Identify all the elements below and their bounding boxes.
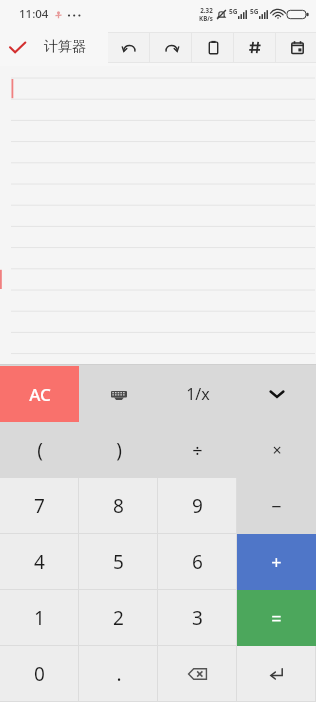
- button[interactable]: ÷: [158, 422, 237, 478]
- staticText: 5G: [250, 7, 259, 16]
- button[interactable]: Date: [276, 32, 316, 63]
- staticText: =: [271, 606, 282, 631]
- button[interactable]: 3: [158, 590, 237, 646]
- staticText: 5: [113, 549, 124, 575]
- staticText: 1: [34, 605, 45, 631]
- staticText: ): [116, 437, 122, 463]
- staticText: 7: [34, 493, 45, 519]
- button[interactable]: 8: [79, 478, 158, 534]
- staticText: AC: [29, 383, 51, 406]
- staticText: 1/x: [186, 383, 210, 405]
- button[interactable]: .: [79, 646, 158, 702]
- staticText: 3: [192, 605, 203, 631]
- button[interactable]: 2: [79, 590, 158, 646]
- button[interactable]: (: [0, 422, 79, 478]
- button[interactable]: Redo: [150, 32, 192, 63]
- button[interactable]: 5: [79, 534, 158, 590]
- staticText: ÷: [192, 438, 203, 463]
- staticText: 0: [34, 661, 45, 687]
- button[interactable]: 7: [0, 478, 79, 534]
- staticText: 计算器: [44, 38, 86, 56]
- staticText: KB/s: [199, 14, 213, 22]
- staticText: 5G: [229, 7, 238, 16]
- staticText: 11:04: [19, 6, 49, 22]
- staticText: (: [37, 437, 43, 463]
- button[interactable]: 1: [0, 590, 79, 646]
- button[interactable]: =: [237, 590, 316, 646]
- staticText: 6: [192, 549, 203, 575]
- button[interactable]: 4: [0, 534, 79, 590]
- button[interactable]: Keyboard: [79, 366, 158, 422]
- button[interactable]: 6: [158, 534, 237, 590]
- staticText: −: [271, 494, 282, 519]
- button[interactable]: 1/x: [158, 366, 237, 422]
- staticText: 2: [113, 605, 124, 631]
- staticText: ×: [272, 439, 282, 461]
- button[interactable]: Undo: [108, 32, 150, 63]
- staticText: 4: [34, 549, 45, 575]
- button[interactable]: Done: [0, 28, 34, 66]
- button[interactable]: Enter: [237, 646, 316, 702]
- button[interactable]: Number format: [234, 32, 276, 63]
- button[interactable]: ×: [237, 422, 316, 478]
- button[interactable]: −: [237, 478, 316, 534]
- button[interactable]: 0: [0, 646, 79, 702]
- button[interactable]: Paste: [192, 32, 234, 63]
- button[interactable]: Backspace: [158, 646, 237, 702]
- button[interactable]: AC: [0, 366, 79, 422]
- staticText: 2.32: [200, 6, 213, 14]
- staticText: .: [116, 661, 122, 687]
- button[interactable]: ): [79, 422, 158, 478]
- staticText: 9: [192, 493, 203, 519]
- button[interactable]: +: [237, 534, 316, 590]
- staticText: +: [271, 550, 282, 575]
- staticText: 8: [113, 493, 124, 519]
- button[interactable]: Collapse: [237, 366, 316, 422]
- button[interactable]: [0, 66, 316, 364]
- button[interactable]: 9: [158, 478, 237, 534]
